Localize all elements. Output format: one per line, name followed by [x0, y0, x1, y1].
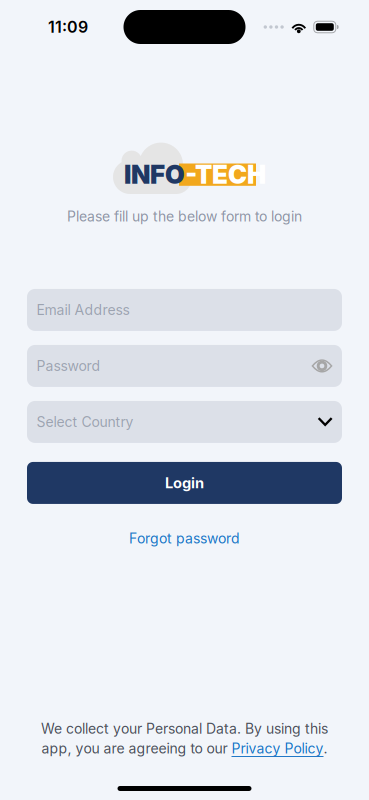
- staticText: Email Address: [36, 301, 129, 318]
- button[interactable]: Login: [27, 462, 342, 504]
- staticText: app, you are agreeing to our: [41, 740, 231, 757]
- staticText: .: [323, 740, 327, 757]
- button[interactable]: Forgot password: [121, 526, 248, 551]
- staticText: Login: [165, 474, 204, 492]
- staticText: Select Country: [36, 413, 133, 430]
- staticText: Privacy Policy: [231, 740, 323, 757]
- staticText: Password: [36, 357, 100, 374]
- button[interactable]: Email Address: [27, 289, 342, 331]
- staticText: -TECH: [185, 159, 266, 190]
- button[interactable]: Privacy Policy: [231, 740, 323, 757]
- staticText: Please fill up the below form to login: [67, 208, 302, 225]
- staticText: We collect your Personal Data. By using …: [41, 720, 328, 737]
- button[interactable]: Password: [27, 345, 342, 387]
- staticText: 11:09: [48, 17, 88, 37]
- staticText: Forgot password: [129, 530, 240, 547]
- staticText: INFO: [124, 159, 185, 190]
- button[interactable]: Select Country: [27, 401, 342, 443]
